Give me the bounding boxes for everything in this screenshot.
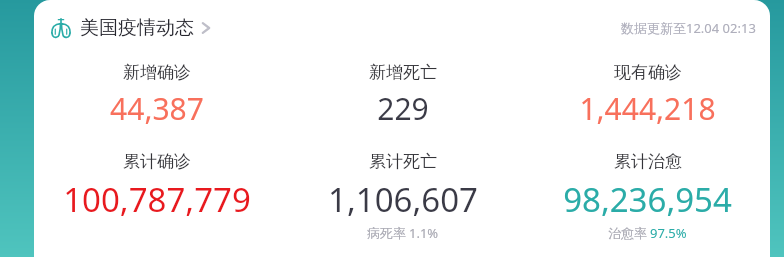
staticText: 44,387 bbox=[110, 88, 204, 129]
staticText: 累计治愈 bbox=[614, 151, 682, 172]
button[interactable]: 疫情 bbox=[50, 16, 214, 40]
staticText: 累计确诊 bbox=[123, 151, 191, 172]
staticText: 1.1% bbox=[409, 224, 439, 242]
staticText: 治愈率 bbox=[608, 225, 647, 241]
staticText: 数据更新至12.04 02:13 bbox=[621, 19, 756, 37]
button[interactable]: 现有确诊 bbox=[525, 62, 770, 129]
staticText: 美国疫情动态 bbox=[80, 16, 194, 40]
staticText: 现有确诊 bbox=[614, 62, 682, 83]
staticText: 病死率 bbox=[367, 225, 406, 241]
staticText: 1,444,218 bbox=[579, 88, 716, 129]
button[interactable]: 新增确诊 bbox=[34, 62, 280, 129]
staticText: 98,236,954 bbox=[563, 177, 732, 222]
other: 疫情 bbox=[50, 17, 72, 39]
staticText: 100,787,779 bbox=[63, 177, 251, 222]
staticText: 累计死亡 bbox=[369, 151, 437, 172]
button[interactable]: 累计死亡 bbox=[280, 151, 525, 242]
button[interactable]: 累计确诊 bbox=[34, 151, 280, 222]
staticText: 1,106,607 bbox=[328, 177, 478, 222]
staticText: 97.5% bbox=[650, 224, 687, 242]
staticText: 新增确诊 bbox=[123, 62, 191, 83]
staticText: 229 bbox=[377, 88, 429, 129]
staticText: 新增死亡 bbox=[369, 62, 437, 83]
button[interactable]: 累计治愈 bbox=[525, 151, 770, 242]
other: 查看详情 bbox=[198, 20, 214, 36]
button[interactable]: 新增死亡 bbox=[280, 62, 525, 129]
